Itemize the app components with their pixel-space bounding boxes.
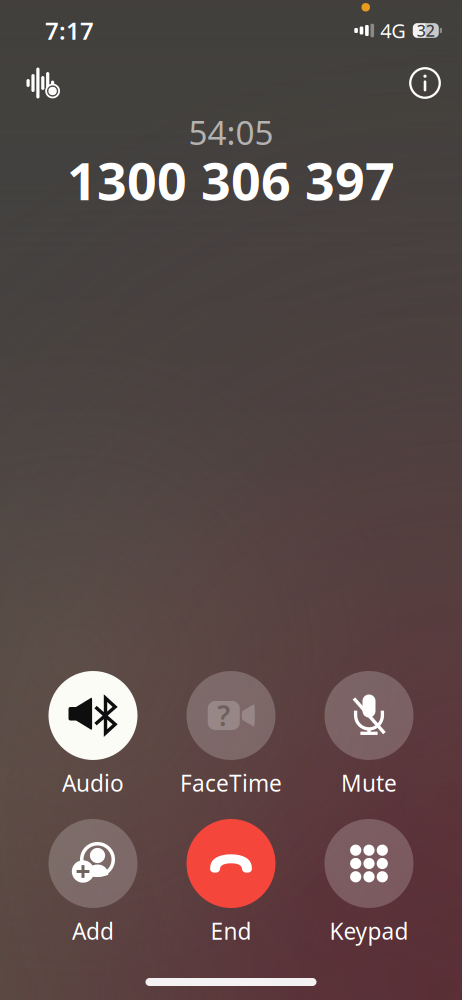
staticText: Audio [62,768,124,798]
button[interactable]: Add [24,819,162,942]
button[interactable]: End [162,819,300,942]
button[interactable]: Call recording [24,61,64,105]
staticText: 32 [417,20,435,41]
staticText: Mute [341,768,397,798]
staticText: 1300 306 397 [67,145,395,215]
staticText: ? [217,697,230,734]
staticText: FaceTime [180,768,282,798]
staticText: Add [72,916,114,946]
staticText: 54:05 [188,110,273,154]
button[interactable]: Keypad [300,819,438,942]
staticText: End [210,916,251,946]
staticText: 7:17 [45,15,94,46]
button[interactable]: ? [162,671,300,794]
staticText: 4G [380,17,406,44]
button[interactable]: Mute [300,671,438,794]
button[interactable]: Audio [24,671,162,794]
staticText: Keypad [329,916,408,946]
button[interactable]: Call details [403,61,447,105]
